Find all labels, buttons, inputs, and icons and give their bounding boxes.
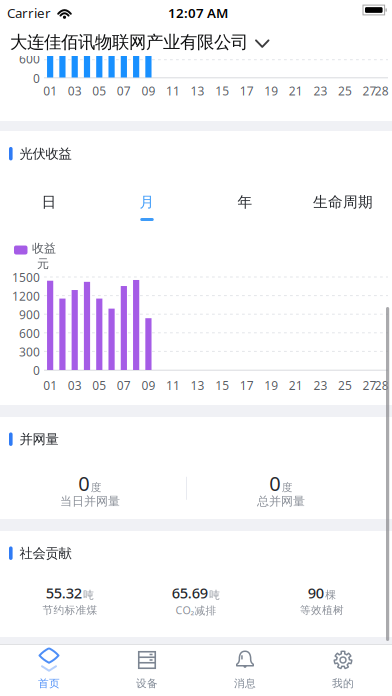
button[interactable]: 消息 xyxy=(196,645,294,690)
staticText: CO₂减排 xyxy=(175,603,216,617)
staticText: 吨 xyxy=(83,588,94,601)
staticText: 19 xyxy=(264,83,278,99)
staticText: 首页 xyxy=(38,677,60,690)
button[interactable]: 设备 xyxy=(98,645,196,690)
staticText: 07 xyxy=(117,377,131,393)
staticText: 15 xyxy=(215,83,229,99)
staticText: 27 xyxy=(363,83,377,99)
staticText: 11 xyxy=(166,83,180,99)
staticText: 28 xyxy=(375,377,389,393)
staticText: 05 xyxy=(92,83,106,99)
button[interactable]: 年 xyxy=(196,193,294,221)
staticText: 01 xyxy=(43,377,57,393)
staticText: 当日并网量 xyxy=(60,494,120,509)
staticText: 17 xyxy=(240,377,254,393)
staticText: 年 xyxy=(237,193,252,211)
staticText: 设备 xyxy=(136,677,158,690)
staticText: 55.32 xyxy=(46,583,82,602)
staticText: 光伏收益 xyxy=(20,145,72,162)
staticText: 600 xyxy=(19,325,40,341)
staticText: 90 xyxy=(308,583,324,602)
staticText: 65.69 xyxy=(172,583,208,602)
staticText: 社会贡献 xyxy=(20,545,72,561)
staticText: 吨 xyxy=(209,588,220,601)
staticText: 元 xyxy=(37,256,49,271)
button[interactable]: 0 xyxy=(187,470,375,497)
staticText: 21 xyxy=(289,377,303,393)
staticText: 15 xyxy=(215,377,229,393)
staticText: Carrier xyxy=(7,4,51,22)
staticText: 月 xyxy=(139,193,154,211)
staticText: 09 xyxy=(141,377,155,393)
staticText: 25 xyxy=(338,83,352,99)
button[interactable]: 月 xyxy=(98,193,196,221)
staticText: 300 xyxy=(19,344,40,360)
staticText: 23 xyxy=(313,83,327,99)
staticText: 1200 xyxy=(12,288,40,304)
staticText: 25 xyxy=(338,377,352,393)
staticText: 度 xyxy=(91,481,102,494)
staticText: 900 xyxy=(19,307,40,323)
staticText: 27 xyxy=(363,377,377,393)
staticText: 0 xyxy=(269,470,280,497)
staticText: 节约标准煤 xyxy=(42,604,97,617)
staticText: 度 xyxy=(282,481,293,494)
staticText: 11 xyxy=(166,377,180,393)
staticText: 13 xyxy=(191,83,205,99)
staticText: 12:07 AM xyxy=(168,4,228,22)
staticText: 21 xyxy=(289,83,303,99)
button[interactable]: 生命周期 xyxy=(294,193,392,221)
staticText: 等效植树 xyxy=(300,604,344,617)
staticText: 大连佳佰讯物联网产业有限公司 xyxy=(10,31,248,53)
staticText: 收益 xyxy=(32,241,56,256)
staticText: 0 xyxy=(78,470,89,497)
staticText: 03 xyxy=(68,377,82,393)
staticText: 13 xyxy=(191,377,205,393)
button[interactable]: 我的 xyxy=(294,645,392,690)
staticText: 09 xyxy=(141,83,155,99)
staticText: 07 xyxy=(117,83,131,99)
staticText: 并网量 xyxy=(20,431,59,447)
staticText: 01 xyxy=(43,83,57,99)
staticText: 17 xyxy=(240,83,254,99)
staticText: 600 xyxy=(19,51,40,67)
staticText: 0 xyxy=(33,70,40,86)
staticText: 生命周期 xyxy=(313,193,373,211)
staticText: 28 xyxy=(375,83,389,99)
staticText: 1500 xyxy=(12,269,40,285)
staticText: 总并网量 xyxy=(257,494,305,509)
staticText: 我的 xyxy=(332,677,354,690)
staticText: 05 xyxy=(92,377,106,393)
button[interactable]: 大连佳佰讯物联网产业有限公司 xyxy=(0,23,392,56)
staticText: 23 xyxy=(313,377,327,393)
staticText: 19 xyxy=(264,377,278,393)
staticText: 0 xyxy=(33,362,40,378)
staticText: 03 xyxy=(68,83,82,99)
staticText: 日 xyxy=(41,193,56,211)
button[interactable]: 0 xyxy=(0,470,180,497)
button[interactable]: 首页 xyxy=(0,645,98,690)
staticText: 消息 xyxy=(234,677,256,690)
button[interactable]: 日 xyxy=(0,193,98,221)
staticText: 棵 xyxy=(325,588,336,601)
